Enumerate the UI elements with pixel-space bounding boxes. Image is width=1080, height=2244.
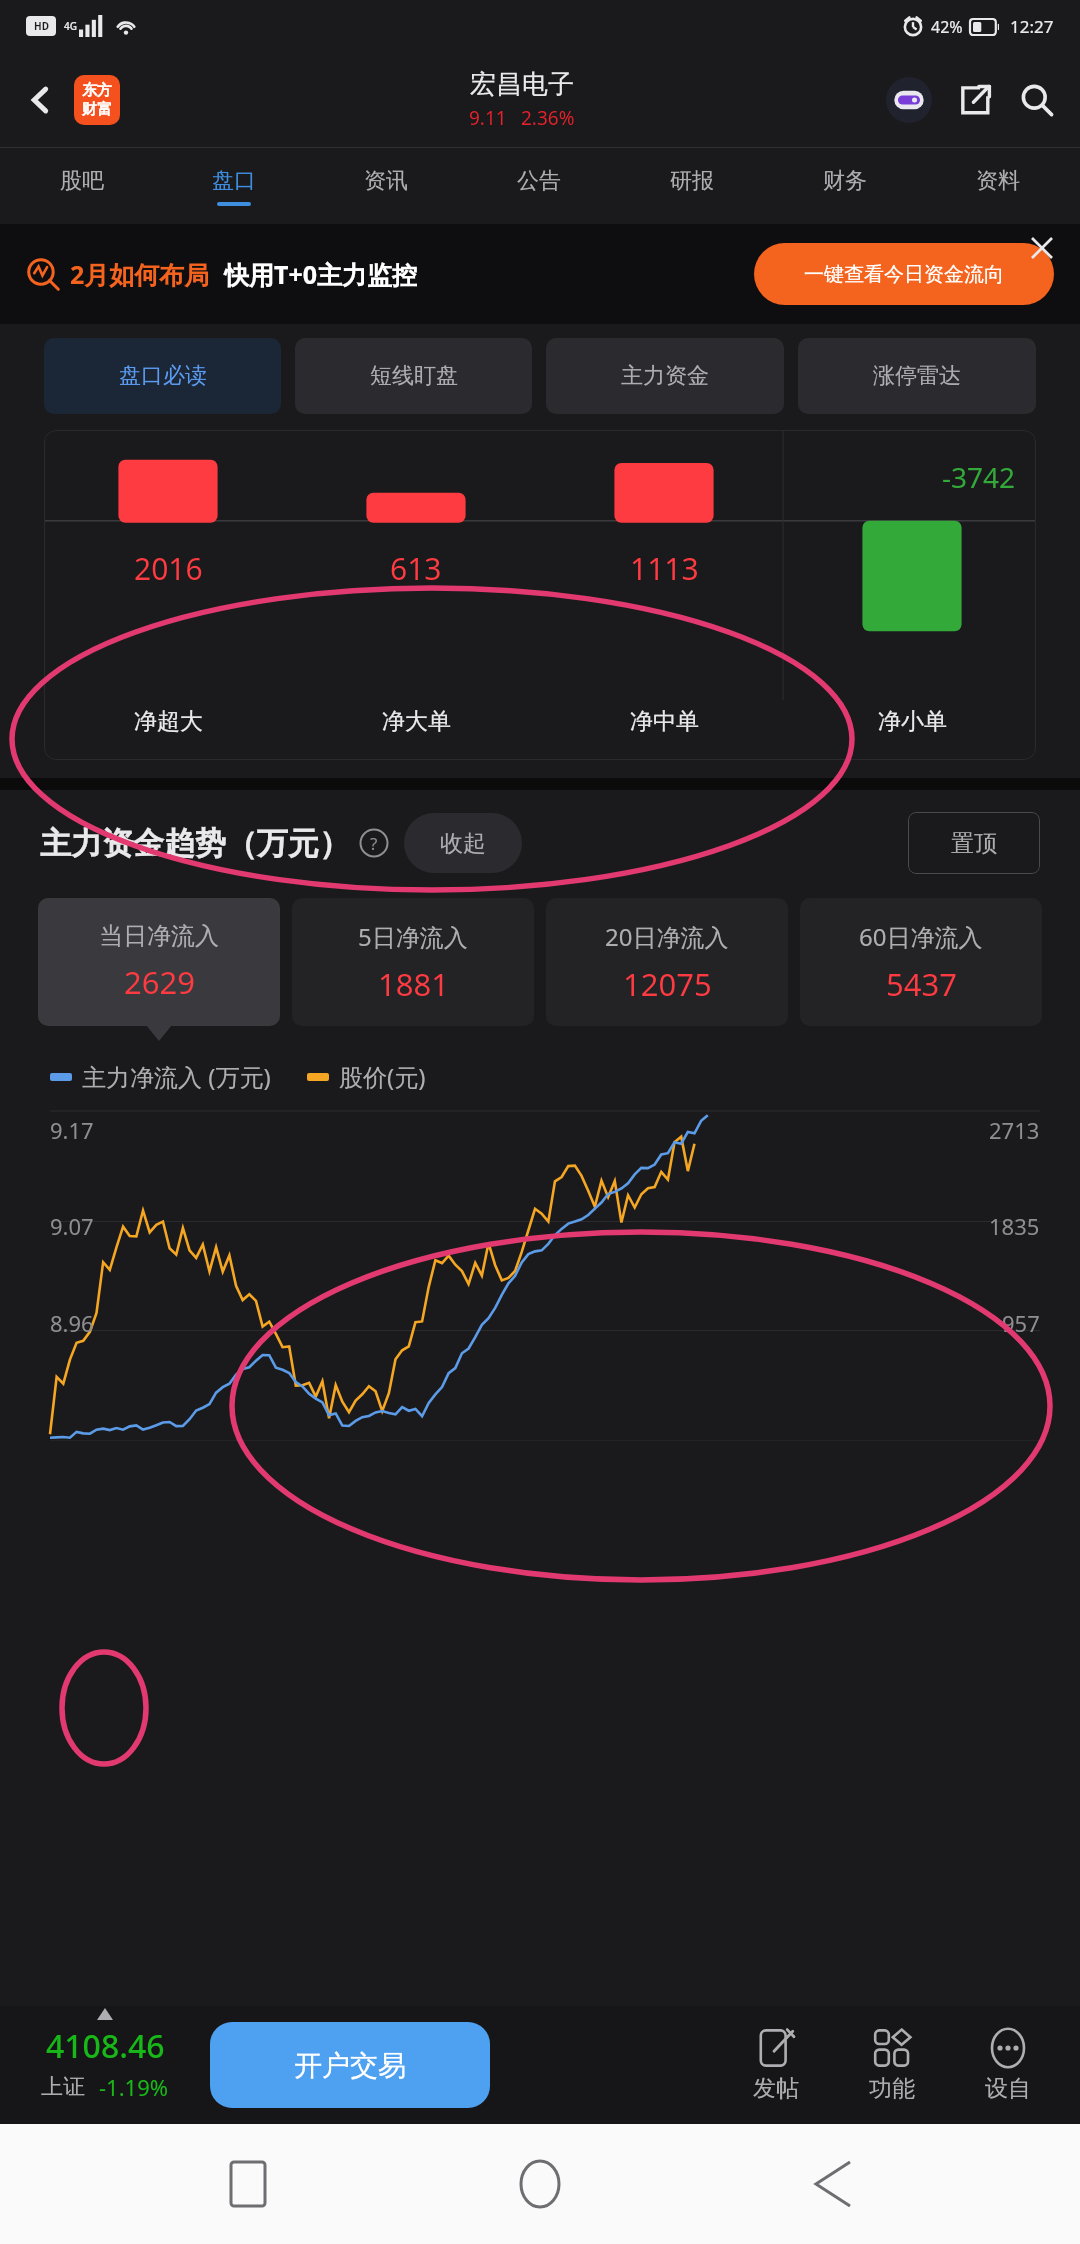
button[interactable]: 财务 — [768, 148, 921, 224]
staticText: 净大单 — [382, 707, 451, 736]
button[interactable]: Close ad — [1022, 228, 1062, 268]
staticText: 股吧 — [60, 167, 104, 195]
staticText: 收起 — [440, 829, 486, 858]
button[interactable]: 60日净流入 — [800, 898, 1042, 1026]
button[interactable]: 功能 — [834, 2006, 950, 2124]
button[interactable]: Back — [14, 73, 68, 127]
staticText: 功能 — [869, 2074, 915, 2103]
staticText: 613 — [390, 548, 442, 589]
staticText: 快用T+0主力监控 — [224, 257, 418, 291]
staticText: -1.19% — [99, 2072, 169, 2102]
staticText: 1835 — [989, 1211, 1040, 1241]
staticText: 置顶 — [951, 829, 997, 858]
staticText: 盘口必读 — [119, 362, 207, 390]
staticText: 主力净流入 (万元) — [82, 1060, 271, 1093]
button[interactable]: Back — [788, 2139, 878, 2229]
staticText: 2016 — [134, 548, 203, 589]
staticText: 盘口 — [212, 167, 256, 195]
staticText: 1113 — [630, 548, 699, 589]
staticText: 957 — [1002, 1308, 1040, 1338]
staticText: 公告 — [517, 167, 561, 195]
button[interactable]: 股吧 — [6, 148, 158, 224]
staticText: 当日净流入 — [99, 921, 219, 951]
staticText: 1881 — [378, 963, 449, 1005]
button[interactable]: 收起 — [404, 813, 522, 873]
staticText: 2713 — [989, 1115, 1040, 1145]
staticText: 12:27 — [1010, 15, 1054, 38]
button[interactable]: 盘口 — [158, 148, 310, 224]
staticText: HD — [34, 19, 49, 33]
staticText: 上证 — [41, 2073, 85, 2101]
staticText: 东方 — [82, 81, 112, 100]
staticText: 设自 — [985, 2074, 1031, 2103]
staticText: 资讯 — [364, 167, 408, 195]
button[interactable]: 发帖 — [718, 2006, 834, 2124]
staticText: 4108.46 — [46, 2024, 165, 2068]
staticText: 财务 — [823, 167, 867, 195]
staticText: 一键查看今日资金流向 — [804, 262, 1004, 287]
staticText: 资料 — [976, 167, 1020, 195]
button[interactable]: Assistant — [882, 73, 936, 127]
button[interactable]: 盘口必读 — [44, 338, 281, 414]
staticText: -3742 — [942, 458, 1016, 496]
button[interactable]: 5日净流入 — [292, 898, 534, 1026]
staticText: 净小单 — [878, 707, 947, 736]
staticText: 2.36% — [521, 105, 575, 131]
staticText: 5437 — [886, 963, 957, 1005]
staticText: 42% — [931, 16, 963, 38]
staticText: 9.11 — [469, 105, 507, 131]
staticText: 9.07 — [50, 1211, 94, 1241]
staticText: 净中单 — [630, 707, 699, 736]
staticText: 4G — [64, 19, 77, 33]
button[interactable]: Help — [358, 827, 390, 859]
staticText: 短线盯盘 — [370, 362, 458, 390]
button[interactable]: Search — [1010, 73, 1064, 127]
staticText: 宏昌电子 — [470, 68, 574, 101]
staticText: 发帖 — [753, 2074, 799, 2103]
staticText: 主力资金趋势（万元） — [40, 824, 350, 863]
button[interactable]: 研报 — [615, 148, 768, 224]
button[interactable]: 4108.46 — [0, 2006, 210, 2124]
button[interactable]: 当日净流入 — [38, 898, 280, 1026]
button[interactable]: 主力资金 — [546, 338, 784, 414]
staticText: 股价(元) — [339, 1060, 426, 1093]
button[interactable]: Share — [948, 73, 1002, 127]
staticText: 研报 — [670, 167, 714, 195]
button[interactable]: 设自 — [950, 2006, 1066, 2124]
staticText: 2月如何布局 — [70, 257, 210, 291]
staticText: 主力资金 — [621, 362, 709, 390]
staticText: 20日净流入 — [605, 920, 729, 953]
button[interactable]: 公告 — [462, 148, 615, 224]
button[interactable]: 2月如何布局 — [0, 224, 1080, 324]
staticText: 12075 — [623, 963, 712, 1005]
staticText: 开户交易 — [294, 2048, 406, 2083]
staticText: 9.17 — [50, 1115, 94, 1145]
staticText: 8.96 — [50, 1308, 94, 1338]
staticText: 净超大 — [134, 707, 203, 736]
button[interactable]: 20日净流入 — [546, 898, 788, 1026]
staticText: 60日净流入 — [859, 920, 983, 953]
button[interactable]: 一键查看今日资金流向 — [754, 243, 1054, 305]
staticText: ? — [370, 832, 378, 855]
button[interactable]: 资讯 — [310, 148, 462, 224]
button[interactable]: Recents — [203, 2139, 293, 2229]
staticText: 涨停雷达 — [873, 362, 961, 390]
button[interactable]: 短线盯盘 — [295, 338, 532, 414]
button[interactable]: 置顶 — [908, 812, 1040, 874]
button[interactable]: 涨停雷达 — [798, 338, 1036, 414]
button[interactable]: Home — [495, 2139, 585, 2229]
staticText: 财富 — [82, 100, 112, 119]
button[interactable]: 开户交易 — [210, 2022, 490, 2108]
button[interactable]: 资料 — [921, 148, 1074, 224]
staticText: 5日净流入 — [358, 920, 468, 953]
staticText: 2629 — [124, 961, 195, 1003]
button[interactable]: 东方 — [74, 75, 120, 125]
